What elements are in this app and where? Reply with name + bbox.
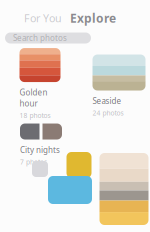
button[interactable]: Golden hour	[19, 48, 60, 120]
staticText: For You	[24, 11, 62, 25]
button[interactable]: Collection	[32, 161, 48, 177]
staticText: Seaside	[92, 95, 121, 106]
button[interactable]: Canyon photo	[99, 153, 148, 225]
button[interactable]: Ocean photo	[48, 176, 92, 204]
button[interactable]: Seaside	[92, 54, 145, 117]
staticText: Explore	[70, 10, 116, 26]
staticText: City nights	[20, 144, 60, 155]
button[interactable]: Explore	[70, 10, 116, 26]
staticText: 18 photos	[19, 111, 50, 120]
staticText: Search photos	[13, 33, 67, 43]
staticText: Golden hour	[19, 87, 47, 109]
button[interactable]: For You	[24, 11, 62, 25]
staticText: 7 photos	[20, 157, 47, 166]
button[interactable]: Search photos	[5, 32, 91, 43]
button[interactable]: Desert photo	[66, 152, 91, 178]
button[interactable]: City nights	[20, 123, 62, 166]
staticText: 24 photos	[92, 108, 123, 117]
